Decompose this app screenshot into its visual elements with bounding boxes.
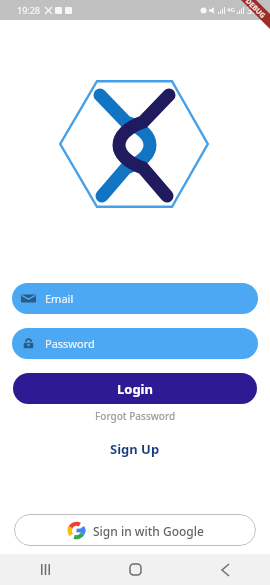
staticText: Sign Up <box>110 440 160 458</box>
staticText: Email <box>45 291 74 306</box>
button[interactable]: Login <box>13 373 257 404</box>
button[interactable]: Sign Up <box>0 438 270 460</box>
staticText: Sign in with Google <box>93 523 204 539</box>
staticText: Forgot Password <box>95 409 176 423</box>
staticText: Login <box>117 380 153 398</box>
button[interactable]: Home <box>118 554 152 585</box>
button[interactable]: Back <box>208 554 242 585</box>
button[interactable]: Email <box>12 283 258 314</box>
staticText: DEBUG <box>243 0 268 21</box>
button[interactable]: Recents <box>28 554 62 585</box>
staticText: 4G <box>227 6 235 14</box>
staticText: 30% <box>247 4 265 16</box>
staticText: 19:28 <box>17 4 41 16</box>
button[interactable]: Password <box>12 328 258 359</box>
button[interactable]: Forgot Password <box>0 407 270 425</box>
staticText: Password <box>45 336 95 351</box>
button[interactable]: Sign in with Google <box>14 514 256 546</box>
